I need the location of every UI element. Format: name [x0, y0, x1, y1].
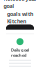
staticText: Daily goal reached — [11, 47, 29, 58]
staticText: goals with Kitchen — [7, 10, 33, 25]
staticText: Achieve your goal — [3, 0, 36, 9]
